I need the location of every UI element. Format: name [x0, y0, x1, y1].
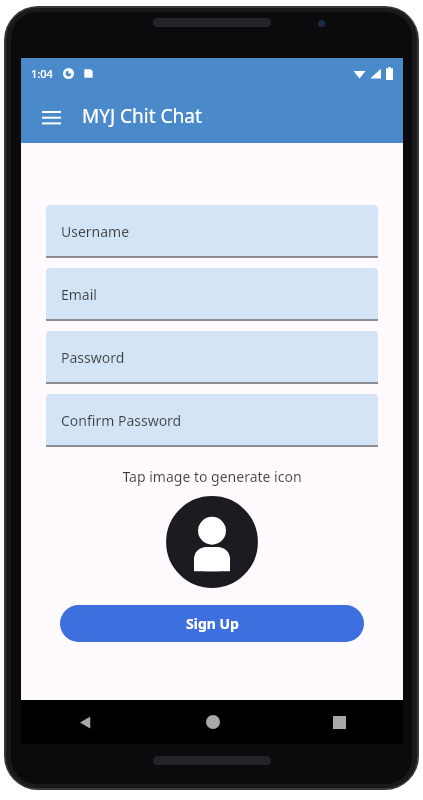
button[interactable]: Recent apps [276, 700, 403, 744]
button[interactable]: Home [149, 700, 276, 744]
staticText: Email [61, 285, 97, 304]
button[interactable]: Back [21, 700, 149, 744]
button[interactable]: Open navigation menu [33, 98, 69, 134]
staticText: Username [61, 222, 130, 241]
button[interactable]: Sign Up [60, 605, 364, 642]
button[interactable]: Email [46, 268, 378, 323]
staticText: Sign Up [186, 614, 239, 633]
staticText: MYJ Chit Chat [82, 103, 202, 129]
button[interactable]: Username [46, 205, 378, 260]
button[interactable]: Password [46, 331, 378, 386]
staticText: Password [61, 348, 125, 367]
staticText: 1:04 [31, 66, 53, 81]
staticText: Tap image to generate icon [46, 467, 378, 486]
staticText: Confirm Password [61, 411, 182, 430]
button[interactable]: Confirm Password [46, 394, 378, 449]
button[interactable]: Tap image to generate icon [167, 497, 257, 587]
